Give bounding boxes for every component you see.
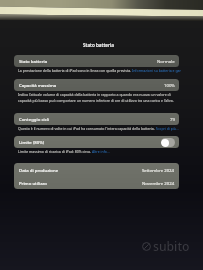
staticText: Capacità massima [19,82,57,88]
staticText: Questo è il numero di volte in cui iPad … [18,126,181,131]
staticText: Conteggio cicli [19,116,50,122]
staticText: Stato batteria [83,42,114,48]
staticText: Stato batteria [19,58,48,64]
staticText: 79 [170,116,175,122]
staticText: Primo utilizzo [19,180,47,186]
staticText: La prestazione della batteria di iPad so… [18,68,181,73]
button[interactable]: Limite 80 percento [161,138,175,147]
staticText: Data di produzione [19,167,59,173]
button[interactable]: Data di produzione [14,163,179,176]
staticText: Indica l'attuale volume di capacità dell… [18,92,181,103]
staticText: Settembre 2024 [142,167,175,173]
button[interactable]: Limite (80%) [14,136,179,148]
staticText: Limite (80%) [19,139,45,145]
button[interactable]: Stato batteria [14,55,179,67]
button[interactable]: Primo utilizzo [14,176,179,189]
button[interactable]: Capacità massima [14,79,179,91]
staticText: Normale [157,58,175,64]
staticText: subito [153,238,190,255]
staticText: 100% [164,82,175,88]
staticText: Limite massimo di ricarica di iPad: 80% … [18,149,181,154]
staticText: Novembre 2024 [142,180,175,186]
button[interactable]: Conteggio cicli [14,113,179,125]
